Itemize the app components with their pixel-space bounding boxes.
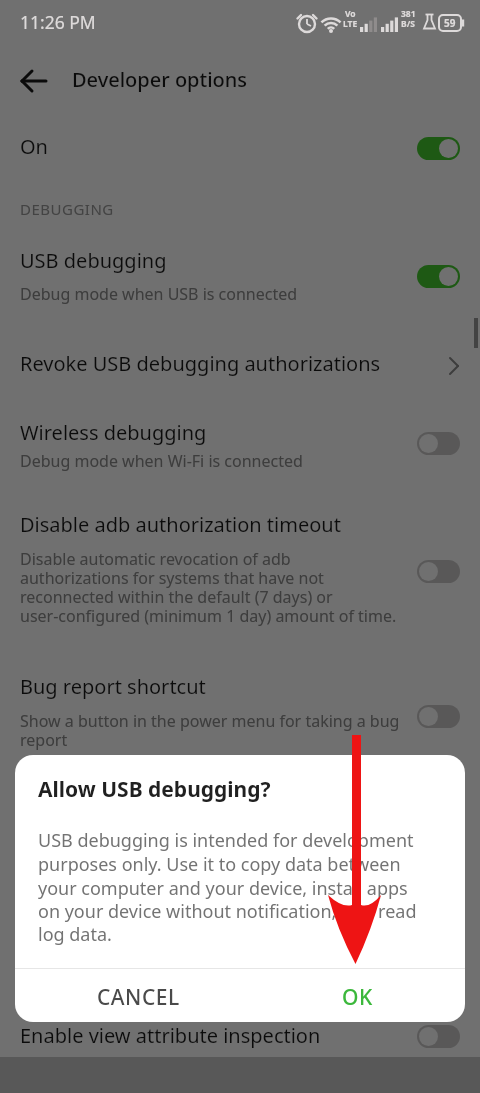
button[interactable] [0, 660, 480, 755]
staticText: Revoke USB debugging authorizations [20, 350, 381, 377]
staticText: Developer options [72, 66, 248, 93]
button[interactable] [0, 338, 480, 390]
button[interactable] [0, 120, 480, 175]
staticText: report [20, 729, 68, 751]
staticText: 59 [444, 16, 456, 30]
staticText: USB debugging is intended for developmen… [38, 828, 414, 853]
staticText: on your device without notification, and… [38, 899, 417, 924]
staticText: USB debugging [20, 247, 167, 274]
staticText: your computer and your device, install a… [38, 876, 408, 901]
staticText: On [20, 133, 48, 160]
staticText: Vo [345, 8, 356, 20]
button[interactable]: OK [265, 973, 449, 1022]
staticText: Show a button in the power menu for taki… [20, 710, 400, 732]
staticText: purposes only. Use it to copy data betwe… [38, 852, 401, 877]
button[interactable] [417, 1025, 460, 1048]
staticText: log data. [38, 922, 112, 947]
staticText: reconnected within the default (7 days) … [20, 586, 333, 608]
staticText: 381 [401, 8, 416, 20]
staticText: 11:26 PM [20, 10, 96, 34]
button[interactable] [0, 408, 480, 480]
staticText: DEBUGGING [20, 199, 114, 219]
staticText: Disable automatic revocation of adb [20, 548, 291, 570]
button[interactable] [417, 137, 460, 160]
staticText: Enable view attribute inspection [20, 1022, 321, 1049]
staticText: Bug report shortcut [20, 673, 206, 700]
button[interactable] [0, 235, 480, 315]
button[interactable] [417, 432, 460, 455]
button[interactable] [0, 500, 480, 640]
staticText: Allow USB debugging? [38, 775, 271, 804]
button[interactable]: CANCEL [46, 973, 230, 1022]
button[interactable] [417, 265, 460, 288]
staticText: OK [342, 983, 373, 1012]
button[interactable] [417, 560, 460, 583]
staticText: LTE [343, 18, 358, 30]
staticText: CANCEL [97, 983, 180, 1012]
staticText: B/S [401, 18, 415, 30]
staticText: Debug mode when USB is connected [20, 283, 298, 305]
staticText: authorizations for systems that have not [20, 567, 324, 589]
staticText: Wireless debugging [20, 419, 207, 446]
staticText: user-configured (minimum 1 day) amount o… [20, 605, 397, 627]
button[interactable] [20, 68, 48, 94]
staticText: Disable adb authorization timeout [20, 511, 341, 538]
staticText: Debug mode when Wi-Fi is connected [20, 450, 303, 472]
button[interactable] [417, 705, 460, 728]
